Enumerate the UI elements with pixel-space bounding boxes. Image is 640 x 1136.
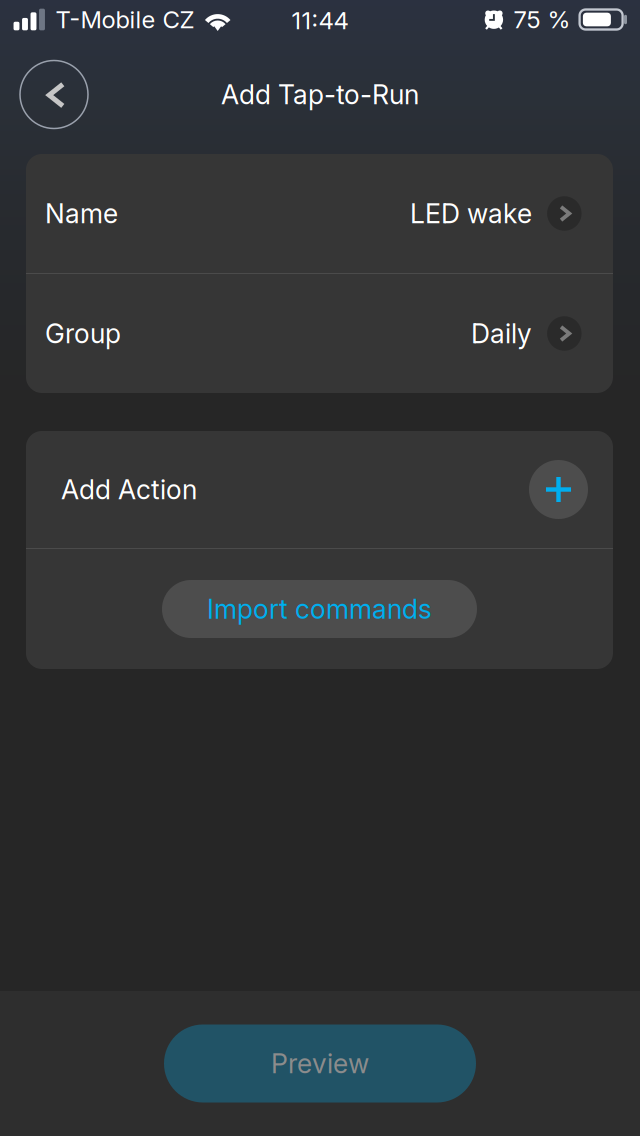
button[interactable]: Name — [26, 154, 613, 273]
staticText: Name — [45, 197, 118, 230]
staticText: T-Mobile CZ — [55, 5, 194, 34]
button[interactable]: Back — [20, 60, 88, 128]
staticText: Group — [45, 317, 121, 350]
staticText: 11:44 — [291, 6, 348, 35]
button[interactable]: Preview — [164, 1024, 476, 1102]
button[interactable]: Group — [26, 274, 613, 393]
staticText: Add Action — [61, 473, 197, 506]
staticText: LED wake — [410, 197, 532, 230]
staticText: Add Tap-to-Run — [221, 78, 419, 111]
staticText: Import commands — [207, 593, 432, 625]
staticText: Daily — [471, 317, 532, 350]
button[interactable]: Add Action — [26, 431, 613, 548]
staticText: 75 % — [514, 5, 571, 34]
staticText: Preview — [271, 1047, 369, 1080]
button[interactable]: Import commands — [162, 580, 477, 638]
